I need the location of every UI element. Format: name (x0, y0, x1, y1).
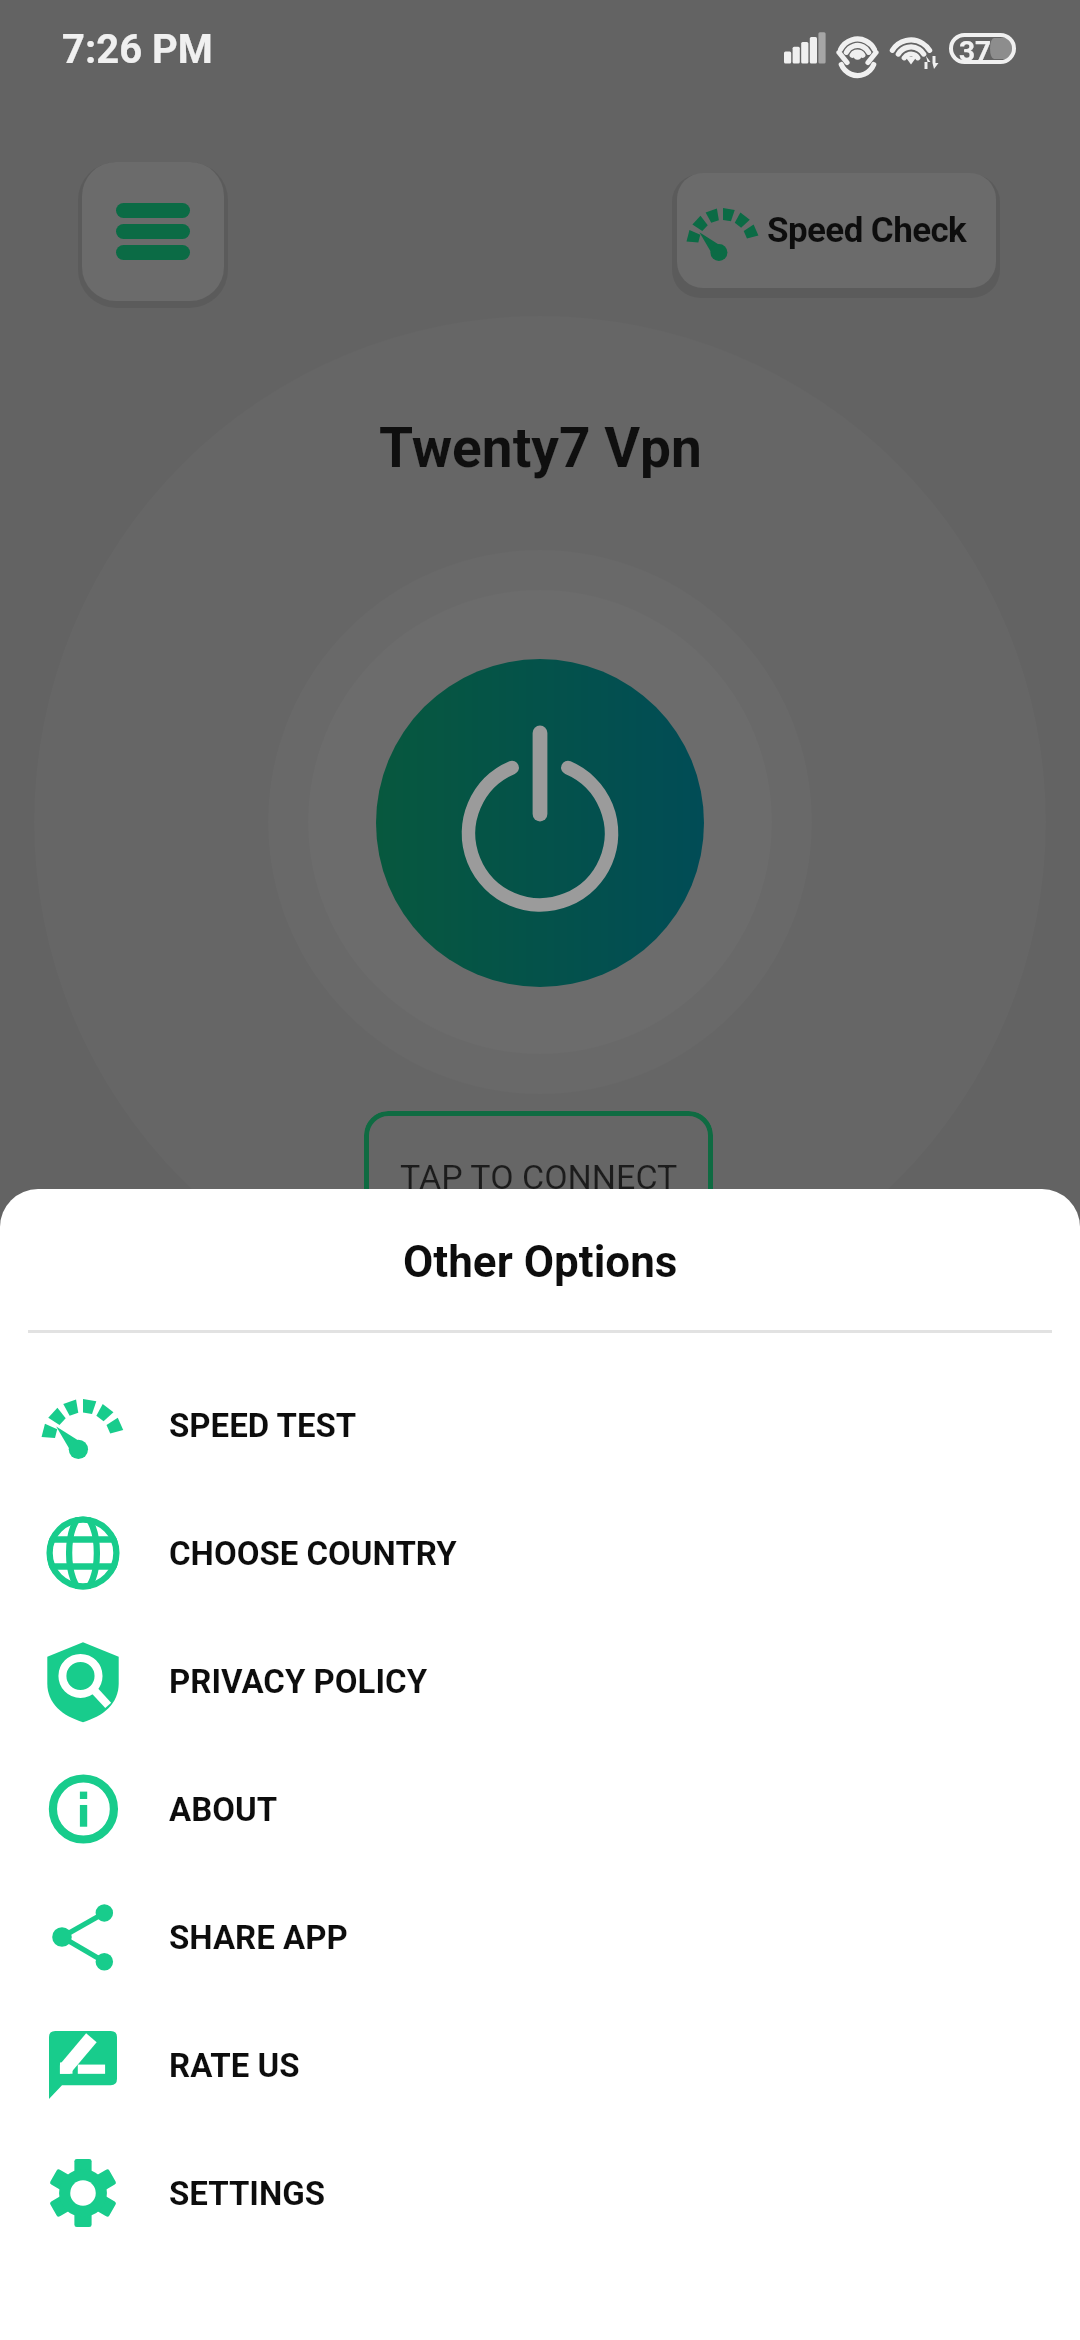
staticText: 37 (959, 35, 992, 68)
button[interactable]: Power (376, 659, 704, 987)
button[interactable]: TAP TO CONNECT (364, 1111, 713, 1227)
staticText: 7:26 PM (62, 26, 213, 73)
button[interactable]: RATE US (0, 2001, 1080, 2129)
staticText: CHOOSE COUNTRY (169, 1534, 457, 1573)
button[interactable]: Menu (82, 162, 224, 301)
button[interactable]: ABOUT (0, 1745, 1080, 1873)
button[interactable]: PRIVACY POLICY (0, 1617, 1080, 1745)
button[interactable]: SPEED TEST (0, 1361, 1080, 1489)
button[interactable]: Speed Check (677, 173, 996, 288)
staticText: SETTINGS (169, 2174, 326, 2213)
staticText: ABOUT (169, 1790, 278, 1829)
button[interactable]: SHARE APP (0, 1873, 1080, 2001)
button[interactable]: SETTINGS (0, 2129, 1080, 2257)
staticText: Speed Check (767, 210, 967, 251)
staticText: RATE US (169, 2046, 300, 2085)
staticText: Twenty7 Vpn (379, 416, 702, 480)
button[interactable]: CHOOSE COUNTRY (0, 1489, 1080, 1617)
staticText: TAP TO CONNECT (400, 1157, 678, 1197)
staticText: PRIVACY POLICY (169, 1662, 428, 1701)
staticText: Other Options (403, 1236, 678, 1288)
staticText: SPEED TEST (169, 1406, 357, 1445)
staticText: SHARE APP (169, 1918, 348, 1957)
